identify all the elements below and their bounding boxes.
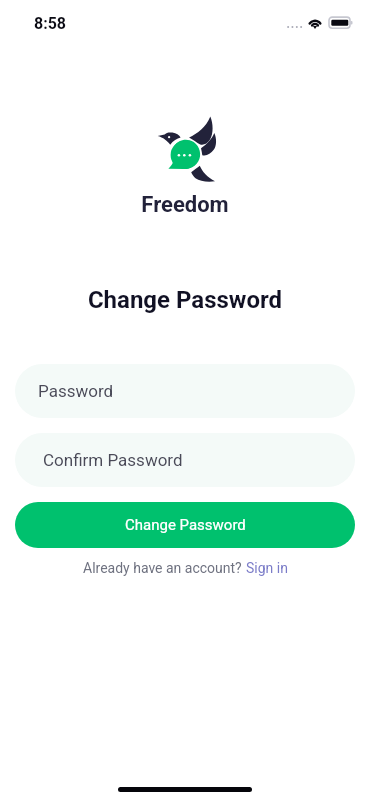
button[interactable]: Change Password <box>15 502 355 548</box>
staticText: Freedom <box>0 192 370 218</box>
staticText: Change Password <box>0 286 370 314</box>
staticText: Already have an account? <box>83 560 246 576</box>
staticText: Confirm Password <box>43 450 183 470</box>
staticText: Sign in <box>246 560 288 576</box>
button[interactable]: Password <box>15 364 355 418</box>
staticText: 8:58 <box>34 14 67 33</box>
staticText: Password <box>38 381 114 401</box>
button[interactable]: Sign in <box>246 560 288 576</box>
staticText: Change Password <box>125 516 246 534</box>
button[interactable]: Confirm Password <box>15 433 355 487</box>
